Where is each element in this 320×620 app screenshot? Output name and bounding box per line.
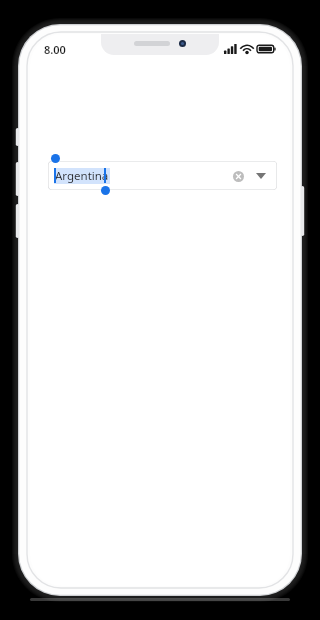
staticText: 8.00 — [44, 42, 66, 57]
button[interactable]: Clear text — [229, 167, 247, 185]
button[interactable]: Argentina — [48, 161, 277, 190]
staticText: Argentina — [55, 168, 109, 184]
button[interactable]: Show suggestions — [252, 167, 270, 185]
